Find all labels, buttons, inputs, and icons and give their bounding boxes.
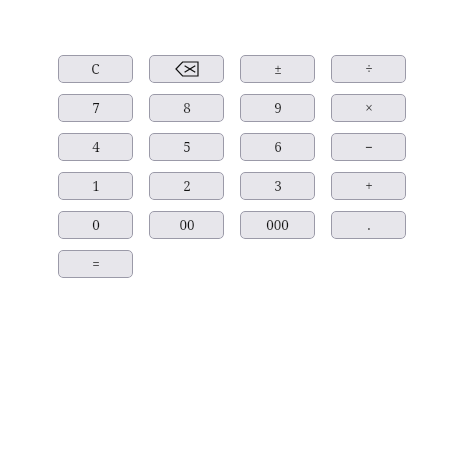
staticText: . (367, 216, 371, 234)
staticText: 4 (92, 138, 100, 156)
staticText: 9 (274, 99, 282, 117)
button[interactable]: + (331, 172, 406, 200)
button[interactable]: 7 (58, 94, 133, 122)
staticText: ÷ (365, 60, 373, 78)
staticText: × (365, 99, 373, 117)
staticText: 2 (183, 177, 191, 195)
button[interactable]: . (331, 211, 406, 239)
button[interactable]: Backspace (149, 55, 224, 83)
button[interactable]: 9 (240, 94, 315, 122)
staticText: 000 (266, 216, 289, 234)
button[interactable]: ÷ (331, 55, 406, 83)
staticText: ± (274, 60, 282, 78)
button[interactable]: × (331, 94, 406, 122)
staticText: 7 (92, 99, 100, 117)
button[interactable]: 1 (58, 172, 133, 200)
button[interactable]: − (331, 133, 406, 161)
staticText: 6 (274, 138, 282, 156)
button[interactable]: 0 (58, 211, 133, 239)
staticText: 00 (179, 216, 195, 234)
staticText: 8 (183, 99, 191, 117)
button[interactable]: 3 (240, 172, 315, 200)
button[interactable]: 000 (240, 211, 315, 239)
staticText: C (91, 60, 100, 78)
staticText: 1 (92, 177, 100, 195)
button[interactable]: ± (240, 55, 315, 83)
staticText: + (365, 177, 373, 195)
staticText: = (92, 255, 100, 273)
button[interactable]: 8 (149, 94, 224, 122)
button[interactable]: 4 (58, 133, 133, 161)
button[interactable]: 6 (240, 133, 315, 161)
button[interactable]: 2 (149, 172, 224, 200)
staticText: − (365, 138, 373, 156)
staticText: 5 (183, 138, 191, 156)
button[interactable]: 00 (149, 211, 224, 239)
button[interactable]: = (58, 250, 133, 278)
button[interactable]: 5 (149, 133, 224, 161)
staticText: 3 (274, 177, 282, 195)
button[interactable]: C (58, 55, 133, 83)
staticText: 0 (92, 216, 100, 234)
